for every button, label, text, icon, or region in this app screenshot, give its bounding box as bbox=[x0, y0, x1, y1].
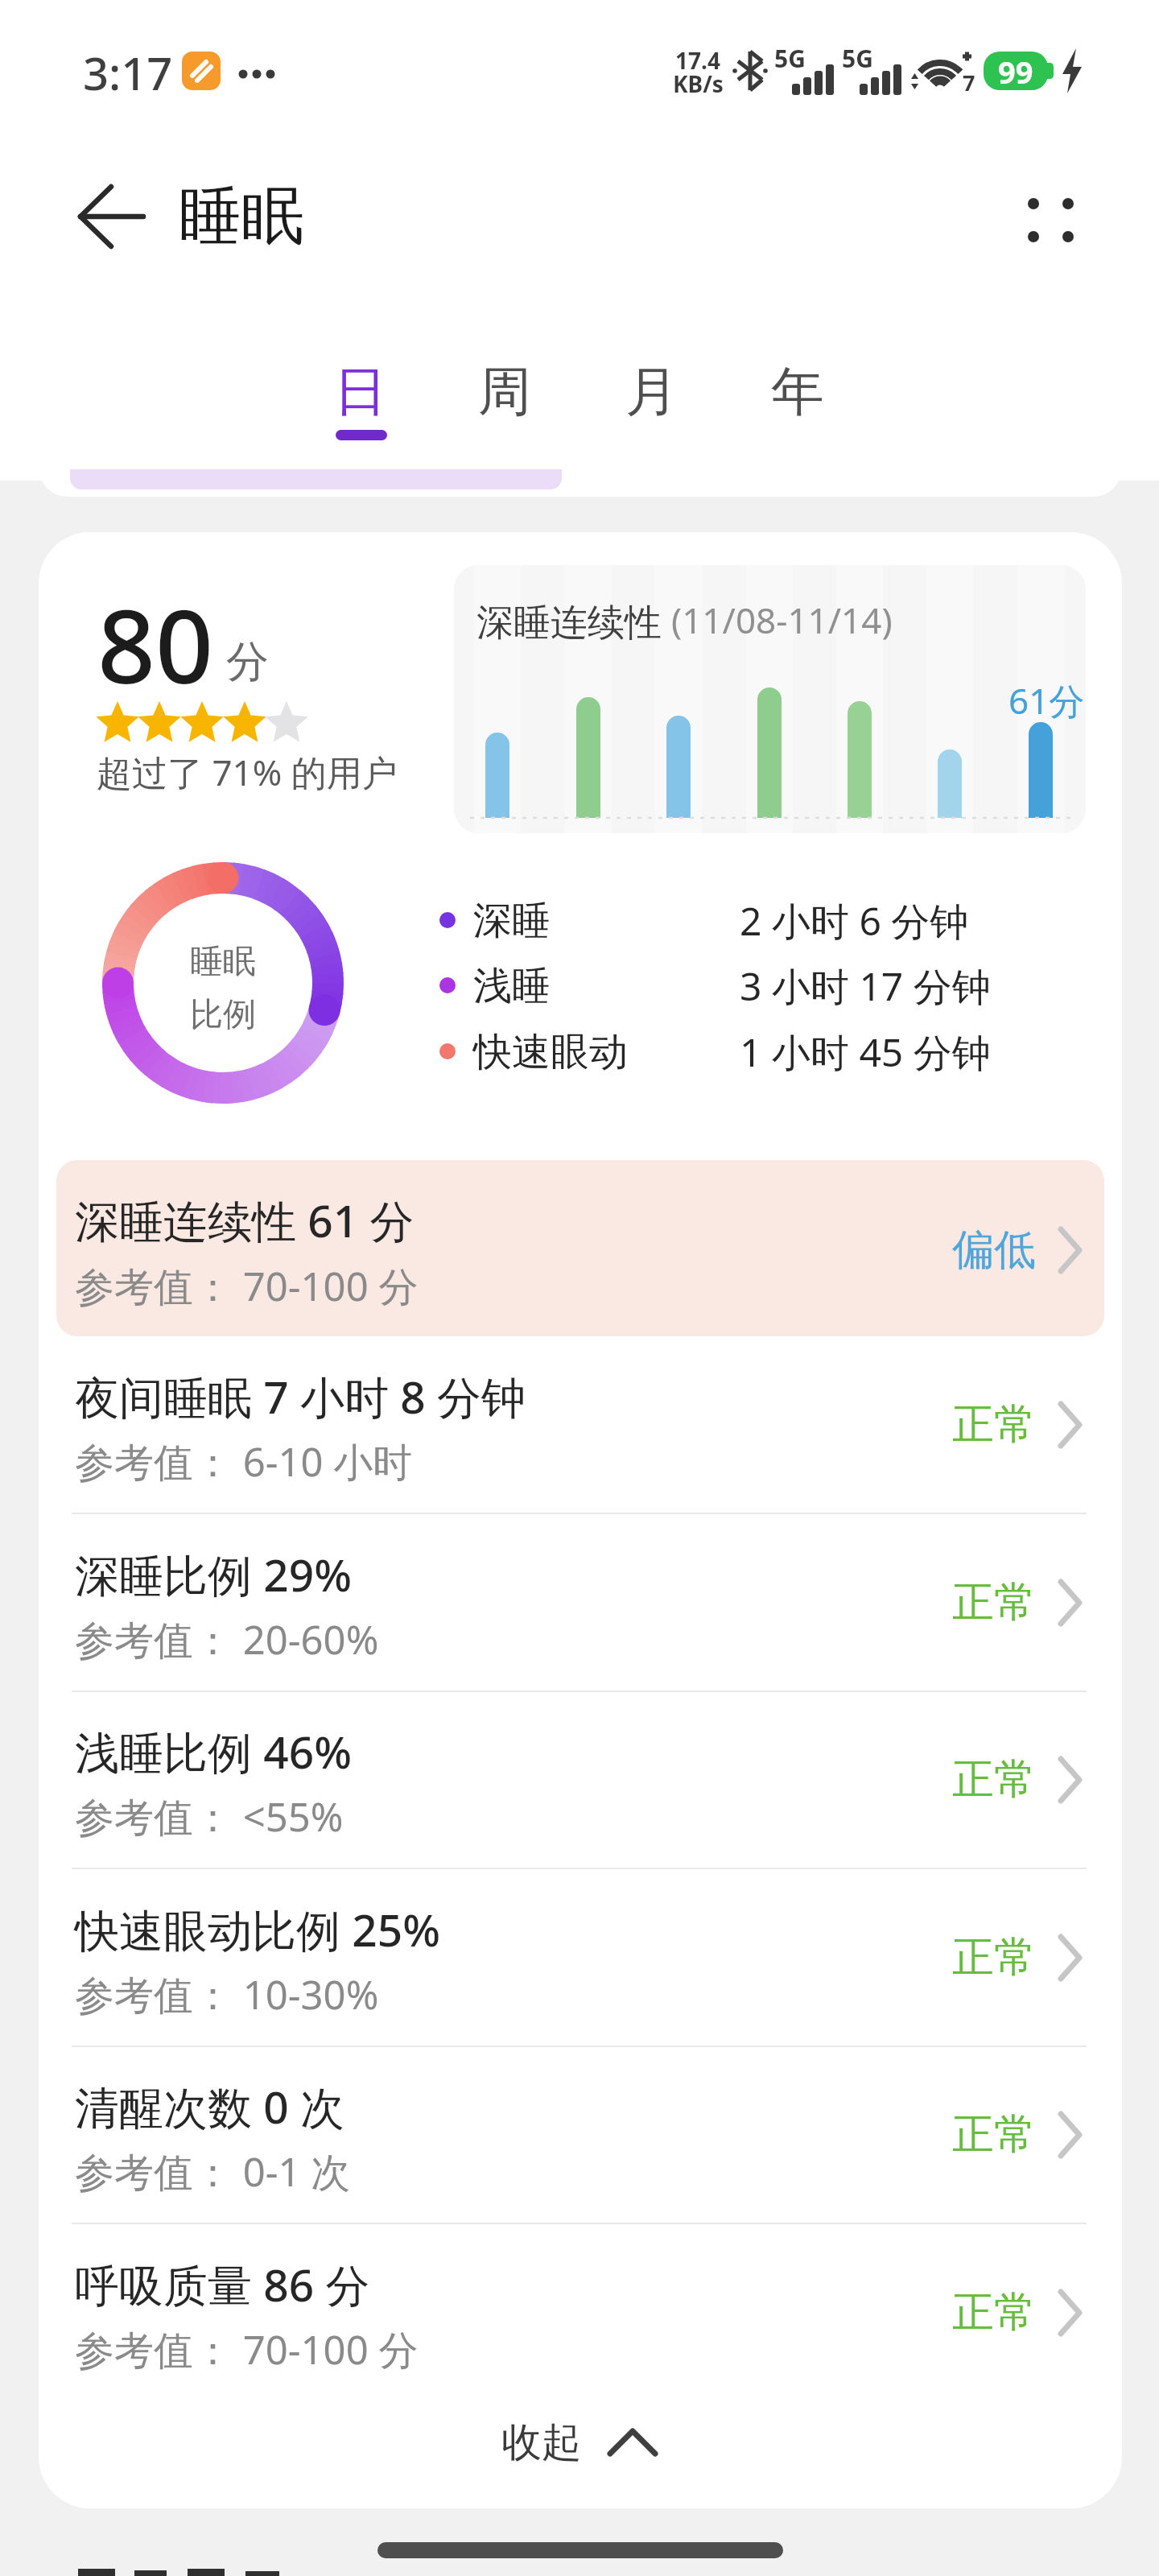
button[interactable] bbox=[56, 177, 161, 258]
staticText: 正常 bbox=[952, 1753, 1036, 1806]
staticText: 快速眼动比例 25% bbox=[75, 1899, 441, 1959]
staticText: (11/08-11/14) bbox=[671, 596, 893, 641]
button[interactable] bbox=[452, 338, 558, 443]
staticText: 深睡连续性 61 分 bbox=[75, 1190, 415, 1250]
staticText: 5G bbox=[842, 42, 873, 75]
button[interactable] bbox=[48, 1869, 1112, 2046]
staticText: 夜间睡眠 7 小时 8 分钟 bbox=[75, 1366, 526, 1426]
staticText: 参考值： <55% bbox=[75, 1790, 344, 1843]
button[interactable] bbox=[56, 1160, 1104, 1336]
button[interactable] bbox=[48, 1691, 1112, 1868]
staticText: 5G bbox=[774, 42, 806, 75]
button[interactable] bbox=[451, 2407, 708, 2479]
staticText: 快速眼动 bbox=[473, 1028, 628, 1076]
staticText: 正常 bbox=[952, 2108, 1036, 2161]
button[interactable] bbox=[48, 2046, 1112, 2223]
staticText: 参考值： 0-1 次 bbox=[75, 2145, 351, 2198]
staticText: 比例 bbox=[190, 994, 256, 1036]
button[interactable] bbox=[998, 169, 1103, 272]
staticText: 61分 bbox=[1008, 676, 1085, 724]
staticText: 正常 bbox=[952, 2286, 1036, 2339]
staticText: 分 bbox=[226, 635, 269, 689]
staticText: KB/s bbox=[673, 68, 724, 99]
staticText: 超过了 71% 的用户 bbox=[97, 748, 398, 796]
staticText: 参考值： 6-10 小时 bbox=[75, 1435, 413, 1488]
button[interactable] bbox=[307, 338, 414, 443]
button[interactable] bbox=[599, 338, 705, 443]
staticText: 睡眠 bbox=[179, 177, 304, 256]
staticText: 年 bbox=[771, 358, 824, 425]
staticText: 99 bbox=[998, 51, 1033, 93]
staticText: 深睡连续性 bbox=[476, 596, 671, 641]
staticText: 1 小时 45 分钟 bbox=[740, 1026, 991, 1079]
staticText: 2 小时 6 分钟 bbox=[740, 894, 969, 947]
button[interactable] bbox=[48, 1336, 1112, 1513]
staticText: 7 bbox=[963, 68, 975, 97]
staticText: 清醒次数 0 次 bbox=[75, 2076, 345, 2136]
staticText: 3:17 bbox=[83, 42, 173, 103]
staticText: 参考值： 10-30% bbox=[75, 1967, 379, 2021]
staticText: 浅睡比例 46% bbox=[75, 1721, 353, 1781]
staticText: 17.4 bbox=[675, 45, 720, 76]
button[interactable] bbox=[48, 2224, 1112, 2401]
staticText: 参考值： 20-60% bbox=[75, 1612, 379, 1666]
staticText: 80 bbox=[97, 575, 214, 713]
staticText: 正常 bbox=[952, 1398, 1036, 1451]
button[interactable] bbox=[744, 338, 851, 443]
staticText: 3 小时 17 分钟 bbox=[740, 960, 991, 1013]
staticText: 呼吸质量 86 分 bbox=[75, 2254, 370, 2314]
staticText: 参考值： 70-100 分 bbox=[75, 1259, 419, 1313]
staticText: 浅睡 bbox=[473, 962, 551, 1010]
staticText: 收起 bbox=[501, 2417, 582, 2468]
staticText: 深睡比例 29% bbox=[75, 1544, 353, 1604]
staticText: 月 bbox=[625, 358, 678, 425]
staticText: 日 bbox=[334, 358, 387, 425]
staticText: 参考值： 70-100 分 bbox=[75, 2322, 419, 2376]
staticText: 周 bbox=[478, 358, 531, 425]
staticText: 正常 bbox=[952, 1931, 1036, 1984]
staticText: 偏低 bbox=[952, 1224, 1036, 1277]
staticText: 深睡 bbox=[473, 897, 551, 945]
button[interactable] bbox=[48, 1514, 1112, 1691]
staticText: 正常 bbox=[952, 1576, 1036, 1629]
staticText: 睡眠 bbox=[190, 941, 256, 983]
